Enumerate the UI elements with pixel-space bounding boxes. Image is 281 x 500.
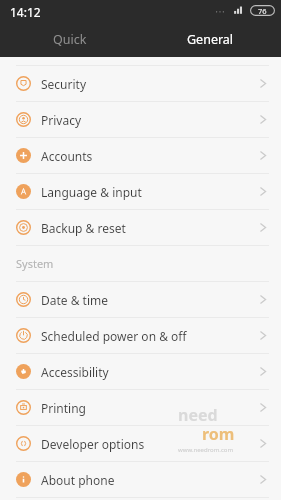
button[interactable]: Quick	[0, 29, 140, 49]
staticText: Security	[41, 76, 87, 92]
staticText: Printing	[41, 400, 86, 416]
staticText: Developer options	[41, 436, 145, 452]
staticText: 14:12	[10, 4, 41, 20]
staticText: About phone	[41, 472, 115, 488]
button[interactable]: Language & input	[0, 174, 281, 209]
staticText: Language & input	[41, 184, 142, 200]
staticText: need	[178, 404, 218, 426]
staticText: Accessibility	[41, 364, 109, 380]
button[interactable]: About phone	[0, 462, 281, 497]
button[interactable]: Printing	[0, 390, 281, 425]
staticText: Accounts	[41, 148, 93, 164]
staticText: 76	[258, 6, 267, 16]
staticText: Quick	[53, 31, 87, 48]
button[interactable]: Backup & reset	[0, 210, 281, 245]
staticText: General	[187, 31, 234, 48]
staticText: Scheduled power on & off	[41, 328, 187, 344]
button[interactable]: General	[140, 29, 281, 49]
button[interactable]: Scheduled power on & off	[0, 318, 281, 353]
button[interactable]: Accounts	[0, 138, 281, 173]
button[interactable]: Developer options	[0, 426, 281, 461]
button[interactable]: Security	[0, 66, 281, 101]
button[interactable]: Privacy	[0, 102, 281, 137]
button[interactable]: Accessibility	[0, 354, 281, 389]
staticText: www.needrom.com	[178, 446, 234, 454]
staticText: rom	[202, 423, 235, 445]
staticText: Privacy	[41, 112, 82, 128]
button[interactable]: Date & time	[0, 282, 281, 317]
staticText: Backup & reset	[41, 220, 126, 236]
staticText: System	[16, 256, 54, 271]
staticText: Date & time	[41, 292, 109, 308]
